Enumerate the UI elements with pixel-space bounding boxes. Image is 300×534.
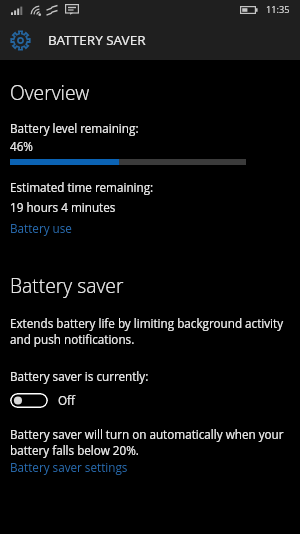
button[interactable]: Battery use (10, 217, 72, 233)
staticText: 19 hours 4 minutes (10, 199, 116, 215)
staticText: Battery use (10, 220, 72, 236)
staticText: 46% (10, 138, 33, 154)
staticText: 11:35 (266, 3, 290, 16)
staticText: Battery level remaining: (10, 120, 139, 136)
staticText: Battery saver (10, 272, 124, 298)
button[interactable]: Settings (0, 22, 300, 60)
staticText: Battery saver settings (10, 459, 128, 475)
staticText: Estimated time remaining: (10, 179, 154, 195)
staticText: Battery saver will turn on automatically… (10, 426, 288, 458)
other: Settings (10, 30, 31, 51)
button[interactable]: Battery saver toggle, off (10, 392, 76, 408)
staticText: Off (58, 392, 76, 408)
button[interactable]: Battery saver settings (10, 456, 128, 472)
staticText: Battery saver is currently: (10, 368, 149, 384)
staticText: Extends battery life by limiting backgro… (10, 315, 288, 347)
staticText: Overview (10, 79, 90, 105)
staticText: BATTERY SAVER (48, 31, 146, 49)
